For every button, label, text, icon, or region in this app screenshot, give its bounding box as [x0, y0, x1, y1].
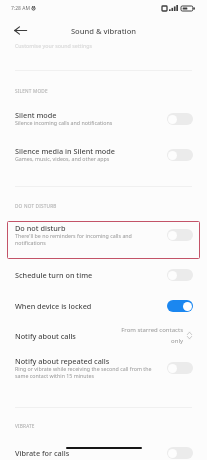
- button[interactable]: Switch off: [167, 362, 193, 374]
- staticText: DO NOT DISTURB: [15, 203, 57, 209]
- button[interactable]: Do not disturb: [0, 223, 207, 247]
- staticText: Silence incoming calls and notifications: [15, 119, 113, 126]
- staticText: Notify about repeated calls: [15, 356, 110, 366]
- staticText: When device is locked: [15, 301, 92, 311]
- staticText: Silent mode: [15, 110, 57, 120]
- button[interactable]: Vibrate for calls: [0, 447, 207, 459]
- button[interactable]: Switch off: [167, 149, 193, 161]
- staticText: Do not disturb: [15, 223, 66, 233]
- button[interactable]: Notify about repeated calls: [0, 356, 207, 380]
- staticText: Games, music, videos, and other apps: [15, 155, 110, 162]
- button[interactable]: Back: [10, 20, 31, 41]
- staticText: VIBRATE: [15, 423, 35, 429]
- staticText: Silence media in Silent mode: [15, 146, 115, 156]
- button[interactable]: Switch off: [167, 447, 193, 459]
- staticText: Ring or vibrate while receiving the seco…: [15, 365, 158, 379]
- staticText: Sound & vibration: [0, 26, 207, 36]
- button[interactable]: Switch off: [167, 229, 193, 241]
- staticText: Vibrate for calls: [15, 448, 70, 458]
- button[interactable]: Notify about calls: [0, 326, 207, 345]
- staticText: There'll be no reminders for incoming ca…: [15, 232, 158, 246]
- staticText: Notify about calls: [15, 331, 120, 341]
- button[interactable]: When device is locked: [0, 300, 207, 312]
- staticText: Schedule turn on time: [15, 270, 93, 280]
- button[interactable]: Switch off: [167, 113, 193, 125]
- staticText: 7:28 AM: [11, 5, 30, 12]
- button[interactable]: Switch on: [167, 300, 193, 312]
- button[interactable]: Silence media in Silent mode: [0, 146, 207, 163]
- button[interactable]: Schedule turn on time: [0, 269, 207, 281]
- staticText: SILENT MODE: [15, 88, 48, 94]
- staticText: Customise your sound settings: [15, 42, 92, 49]
- button[interactable]: Silent mode: [0, 110, 207, 127]
- staticText: From starred contacts only: [120, 326, 183, 345]
- button[interactable]: Switch off: [167, 269, 193, 281]
